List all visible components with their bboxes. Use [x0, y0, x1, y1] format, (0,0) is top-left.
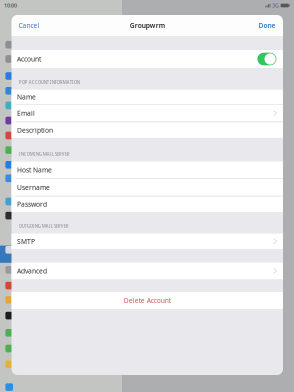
button[interactable]: Cancel: [16, 18, 41, 33]
button[interactable]: Account on: [257, 53, 276, 65]
button[interactable]: Description: [11, 122, 283, 138]
staticText: INCOMING MAIL SERVER: [19, 150, 70, 157]
staticText: OUTGOING MAIL SERVER: [19, 222, 69, 229]
staticText: Name: [17, 92, 36, 101]
staticText: 3G: [272, 2, 279, 9]
staticText: 10:00: [4, 2, 17, 9]
button[interactable]: SMTP: [11, 234, 283, 249]
staticText: Host Name: [17, 165, 52, 174]
staticText: Groupwrm: [130, 21, 165, 30]
button[interactable]: Advanced: [11, 263, 283, 279]
staticText: Account: [17, 54, 41, 64]
staticText: SMTP: [17, 237, 35, 246]
staticText: Advanced: [17, 266, 47, 275]
staticText: Username: [17, 183, 50, 192]
staticText: Description: [17, 125, 53, 135]
staticText: Delete Account: [124, 296, 171, 305]
button[interactable]: Name: [11, 90, 283, 104]
button[interactable]: Host Name: [11, 162, 283, 178]
button[interactable]: Email: [11, 105, 283, 122]
button[interactable]: Done: [256, 18, 277, 33]
staticText: POP ACCOUNT INFORMATION: [19, 78, 80, 85]
button[interactable]: Delete Account: [11, 292, 283, 309]
button[interactable]: Username: [11, 179, 283, 196]
button[interactable]: Password: [11, 196, 283, 212]
staticText: Done: [258, 21, 275, 30]
staticText: Email: [17, 109, 35, 118]
staticText: Cancel: [18, 21, 39, 30]
staticText: Password: [17, 200, 47, 209]
